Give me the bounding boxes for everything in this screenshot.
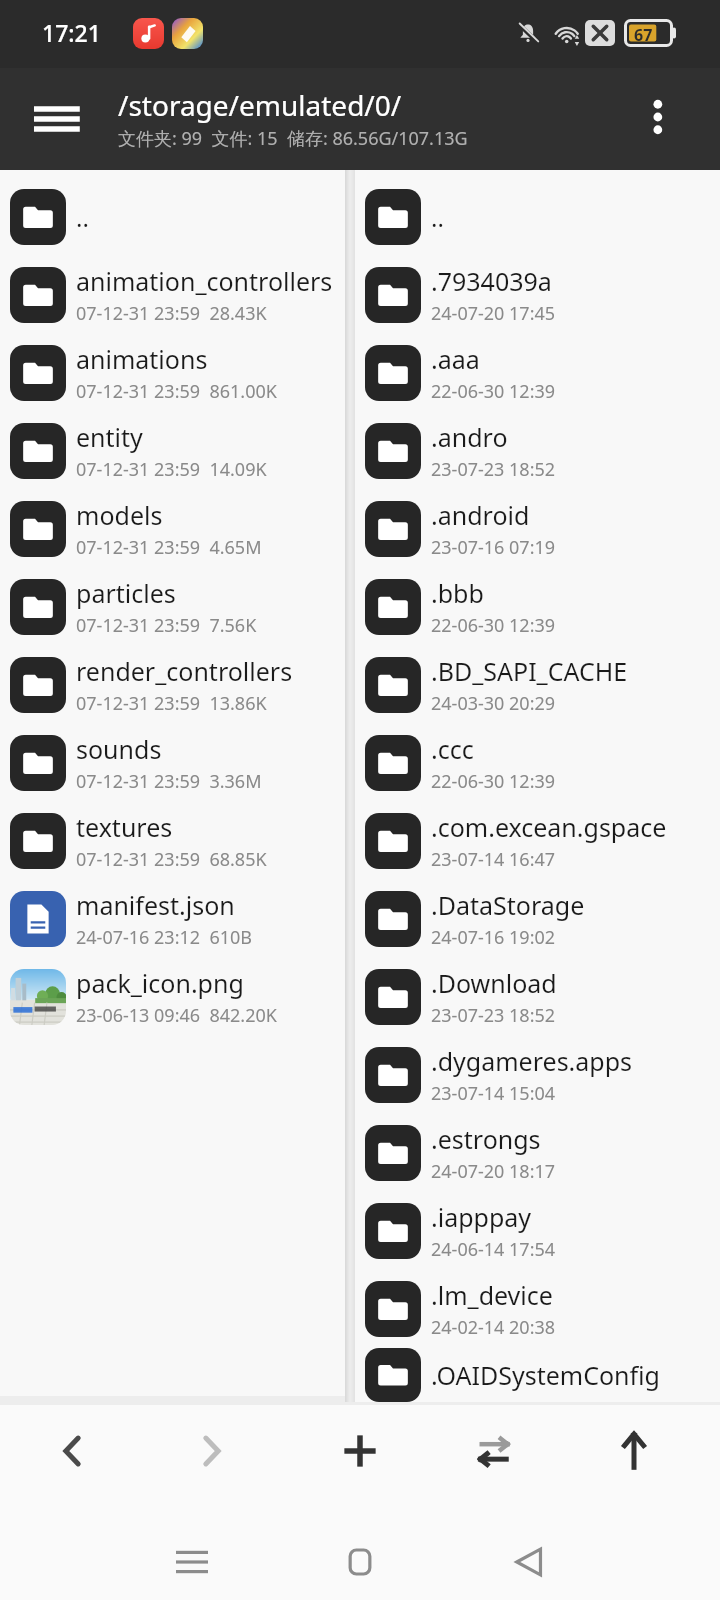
staticText: .bbb (431, 576, 484, 610)
button[interactable]: .Download (355, 958, 720, 1036)
staticText: 24-07-20 18:17 (431, 1159, 556, 1184)
button[interactable]: Recent apps (152, 1522, 232, 1600)
staticText: particles (76, 576, 176, 610)
button[interactable]: .android (355, 490, 720, 568)
staticText: 67 (634, 24, 653, 46)
staticText: 23-07-16 07:19 (431, 535, 556, 560)
button[interactable]: .OAIDSystemConfig (355, 1348, 720, 1402)
staticText: 23-07-14 15:04 (431, 1081, 556, 1106)
button[interactable]: Back (488, 1522, 568, 1600)
button[interactable]: manifest.json (0, 880, 345, 958)
button[interactable]: .. (0, 178, 345, 256)
staticText: .ccc (431, 732, 474, 766)
staticText: .dygameres.apps (431, 1044, 633, 1078)
staticText: textures (76, 810, 173, 844)
staticText: 24-07-16 23:12 610B (76, 925, 253, 950)
button[interactable]: Forward (178, 1417, 246, 1485)
button[interactable]: .7934039a (355, 256, 720, 334)
staticText: 24-07-20 17:45 (431, 301, 556, 326)
button[interactable]: Up (600, 1417, 668, 1485)
staticText: entity (76, 420, 143, 454)
staticText: 23-06-13 09:46 842.20K (76, 1003, 277, 1028)
button[interactable]: .dygameres.apps (355, 1036, 720, 1114)
staticText: 07-12-31 23:59 4.65M (76, 535, 262, 560)
staticText: 24-03-30 20:29 (431, 691, 556, 716)
button[interactable]: pack_icon.png (0, 958, 345, 1036)
button[interactable]: .DataStorage (355, 880, 720, 958)
button[interactable]: .bbb (355, 568, 720, 646)
button[interactable]: sounds (0, 724, 345, 802)
button[interactable]: More options (630, 88, 688, 146)
staticText: animations (76, 342, 208, 376)
button[interactable]: animations (0, 334, 345, 412)
staticText: 07-12-31 23:59 7.56K (76, 613, 257, 638)
button[interactable]: entity (0, 412, 345, 490)
staticText: .OAIDSystemConfig (431, 1358, 660, 1392)
staticText: .BD_SAPI_CACHE (431, 654, 628, 688)
staticText: .. (431, 201, 444, 234)
staticText: .estrongs (431, 1122, 541, 1156)
button[interactable]: Menu (20, 88, 82, 150)
staticText: sounds (76, 732, 162, 766)
button[interactable]: textures (0, 802, 345, 880)
staticText: .andro (431, 420, 508, 454)
staticText: 23-07-23 18:52 (431, 457, 556, 482)
button[interactable]: particles (0, 568, 345, 646)
staticText: .aaa (431, 342, 480, 376)
staticText: 07-12-31 23:59 3.36M (76, 769, 262, 794)
staticText: render_controllers (76, 654, 293, 688)
staticText: 23-07-14 16:47 (431, 847, 556, 872)
button[interactable]: .BD_SAPI_CACHE (355, 646, 720, 724)
staticText: 07-12-31 23:59 28.43K (76, 301, 267, 326)
button[interactable]: .andro (355, 412, 720, 490)
staticText: 17:21 (42, 17, 101, 48)
staticText: manifest.json (76, 888, 235, 922)
button[interactable]: .. (355, 178, 720, 256)
staticText: 24-06-14 17:54 (431, 1237, 556, 1262)
button[interactable]: .estrongs (355, 1114, 720, 1192)
button[interactable]: animation_controllers (0, 256, 345, 334)
button[interactable]: .iapppay (355, 1192, 720, 1270)
staticText: .7934039a (431, 264, 552, 298)
staticText: 文件夹: 99 文件: 15 储存: 86.56G/107.13G (118, 126, 468, 151)
staticText: 22-06-30 12:39 (431, 769, 556, 794)
staticText: /storage/emulated/0/ (118, 86, 402, 124)
staticText: 07-12-31 23:59 68.85K (76, 847, 267, 872)
staticText: .android (431, 498, 530, 532)
staticText: 07-12-31 23:59 14.09K (76, 457, 267, 482)
staticText: 24-07-16 19:02 (431, 925, 556, 950)
staticText: 23-07-23 18:52 (431, 1003, 556, 1028)
button[interactable]: Back (38, 1417, 106, 1485)
button[interactable]: .aaa (355, 334, 720, 412)
button[interactable]: Home (320, 1522, 400, 1600)
staticText: 22-06-30 12:39 (431, 379, 556, 404)
staticText: .. (76, 201, 89, 234)
staticText: 22-06-30 12:39 (431, 613, 556, 638)
button[interactable]: New (326, 1417, 394, 1485)
staticText: 24-02-14 20:38 (431, 1315, 556, 1340)
staticText: pack_icon.png (76, 966, 244, 1000)
button[interactable]: render_controllers (0, 646, 345, 724)
button[interactable]: .ccc (355, 724, 720, 802)
button[interactable]: Switch panes (460, 1417, 528, 1485)
staticText: .lm_device (431, 1278, 553, 1312)
staticText: 07-12-31 23:59 861.00K (76, 379, 277, 404)
button[interactable]: .lm_device (355, 1270, 720, 1348)
staticText: .DataStorage (431, 888, 585, 922)
staticText: .com.excean.gspace (431, 810, 667, 844)
staticText: .iapppay (431, 1200, 532, 1234)
staticText: .Download (431, 966, 557, 1000)
button[interactable]: .com.excean.gspace (355, 802, 720, 880)
button[interactable]: models (0, 490, 345, 568)
staticText: animation_controllers (76, 264, 333, 298)
staticText: 07-12-31 23:59 13.86K (76, 691, 267, 716)
staticText: models (76, 498, 163, 532)
